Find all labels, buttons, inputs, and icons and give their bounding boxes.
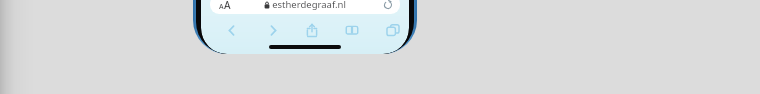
button[interactable]: Reload page xyxy=(381,0,394,11)
button[interactable]: Forward xyxy=(262,19,284,41)
staticText: A xyxy=(224,0,231,12)
button[interactable]: Back xyxy=(220,19,242,41)
staticText: estherdegraaf.nl xyxy=(272,0,346,11)
button[interactable]: Text size options xyxy=(219,0,231,12)
button[interactable]: Text size options xyxy=(210,0,400,14)
button[interactable]: Bookmarks xyxy=(341,19,363,41)
button[interactable]: Tabs xyxy=(382,19,404,41)
staticText: dle xyxy=(229,0,288,3)
staticText: A xyxy=(219,2,224,12)
button[interactable]: Share xyxy=(301,19,323,41)
